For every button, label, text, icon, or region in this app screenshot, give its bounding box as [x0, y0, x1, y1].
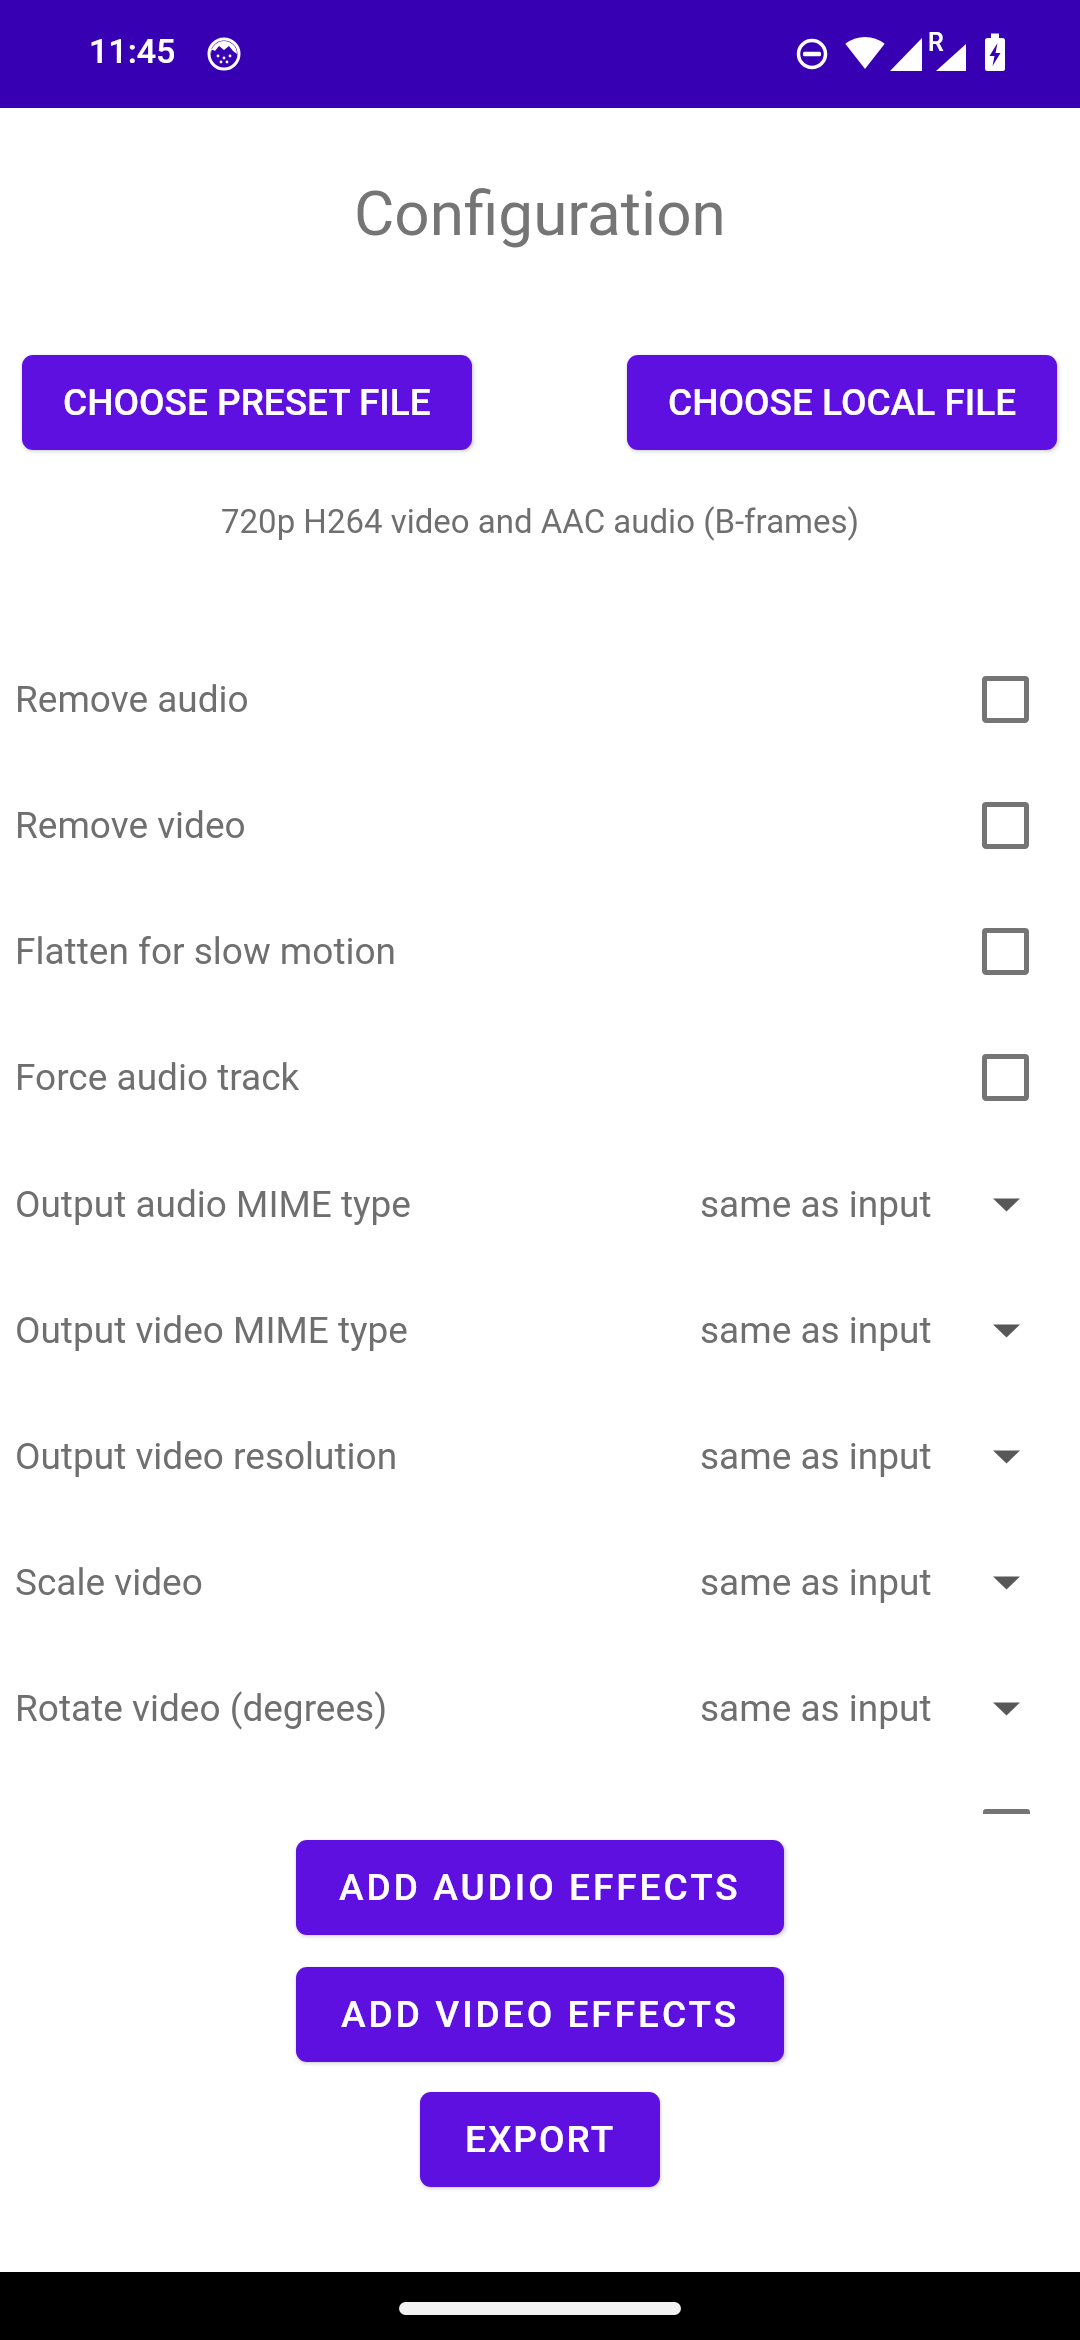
staticText: Rotate video (degrees): [15, 1687, 388, 1730]
button[interactable]: [982, 802, 1029, 849]
staticText: Configuration: [354, 177, 726, 250]
button[interactable]: ADD VIDEO EFFECTS: [296, 1967, 784, 2062]
staticText: Flatten for slow motion: [15, 930, 397, 973]
staticText: CHOOSE LOCAL FILE: [668, 381, 1017, 424]
staticText: Output audio MIME type: [15, 1183, 411, 1226]
button[interactable]: CHOOSE PRESET FILE: [22, 355, 472, 450]
staticText: Output video MIME type: [15, 1309, 408, 1352]
staticText: Scale video: [15, 1561, 203, 1604]
staticText: Output video resolution: [15, 1435, 398, 1478]
staticText: ADD VIDEO EFFECTS: [341, 1993, 740, 2036]
staticText: Remove audio: [15, 678, 249, 721]
staticText: 720p H264 video and AAC audio (B-frames): [221, 502, 860, 541]
button[interactable]: [982, 676, 1029, 723]
staticText: R: [928, 28, 944, 57]
staticText: 11:45: [89, 31, 176, 71]
staticText: ADD AUDIO EFFECTS: [339, 1866, 741, 1909]
button[interactable]: same as input: [700, 1183, 1020, 1226]
button[interactable]: same as input: [700, 1687, 1020, 1730]
staticText: Force audio track: [15, 1056, 300, 1099]
staticText: same as input: [700, 1435, 932, 1478]
staticText: EXPORT: [465, 2118, 616, 2161]
button[interactable]: [982, 928, 1029, 975]
button[interactable]: same as input: [700, 1309, 1020, 1352]
staticText: Remove video: [15, 804, 246, 847]
staticText: same as input: [700, 1687, 932, 1730]
button[interactable]: EXPORT: [420, 2092, 660, 2187]
button[interactable]: [982, 1054, 1029, 1101]
staticText: same as input: [700, 1309, 932, 1352]
button[interactable]: ADD AUDIO EFFECTS: [296, 1840, 784, 1935]
button[interactable]: same as input: [700, 1435, 1020, 1478]
staticText: same as input: [700, 1561, 932, 1604]
button[interactable]: same as input: [700, 1561, 1020, 1604]
staticText: CHOOSE PRESET FILE: [63, 381, 431, 424]
staticText: same as input: [700, 1183, 932, 1226]
button[interactable]: CHOOSE LOCAL FILE: [627, 355, 1057, 450]
